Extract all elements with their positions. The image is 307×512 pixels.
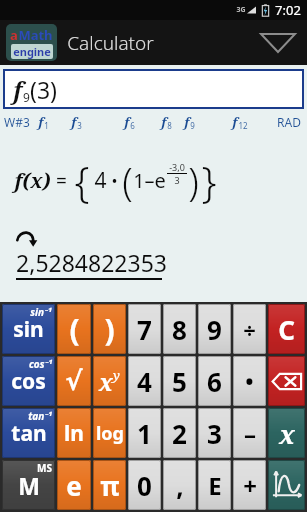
staticText: 5 <box>172 364 187 399</box>
button[interactable]: ln <box>57 408 91 458</box>
staticText: 1–e <box>133 167 166 194</box>
staticText: f <box>184 113 190 131</box>
button[interactable]: ÷ <box>233 304 266 354</box>
button[interactable]: 5 <box>163 356 196 406</box>
button[interactable]: E <box>198 460 231 510</box>
staticText: ) <box>104 309 115 350</box>
staticText: a <box>10 26 18 44</box>
button[interactable]: ) <box>93 304 126 354</box>
button[interactable]: aMath engine logo <box>10 26 53 59</box>
button[interactable]: • <box>233 356 266 406</box>
staticText: W#3 <box>4 114 30 130</box>
button[interactable]: cos <box>2 356 55 406</box>
button[interactable]: 8 <box>163 304 196 354</box>
staticText: ) <box>188 155 199 207</box>
staticText: = <box>56 168 67 194</box>
button[interactable]: √ <box>57 356 91 406</box>
staticText: ÷ <box>243 314 256 344</box>
staticText: 3 <box>77 120 82 131</box>
staticText: 7 <box>137 312 152 347</box>
staticText: 0 <box>137 468 152 503</box>
button[interactable]: x <box>268 408 305 458</box>
staticText: f <box>13 74 23 105</box>
staticText: Math <box>18 26 53 44</box>
button[interactable]: 6 <box>198 356 231 406</box>
staticText: -3,0 <box>169 161 185 173</box>
staticText: M <box>18 470 40 501</box>
staticText: log <box>96 421 124 446</box>
staticText: tan⁻¹ <box>28 409 52 423</box>
staticText: 1 <box>44 120 49 131</box>
button[interactable]: 2,5284822353 <box>16 247 167 280</box>
staticText: E <box>208 469 222 502</box>
staticText: f <box>161 113 167 131</box>
staticText: Calculator <box>67 30 154 56</box>
staticText: f(x) <box>14 167 51 194</box>
button[interactable]: Show more options <box>255 23 301 63</box>
staticText: 6 <box>207 364 222 399</box>
button[interactable]: e <box>57 460 91 510</box>
staticText: 2 <box>172 416 187 451</box>
button[interactable]: x <box>93 356 126 406</box>
staticText: f <box>232 113 238 131</box>
button[interactable]: 1 <box>128 408 161 458</box>
staticText: } <box>201 152 217 209</box>
button[interactable]: π <box>93 460 126 510</box>
staticText: cos⁻¹ <box>29 357 52 371</box>
button[interactable]: f <box>184 113 195 131</box>
staticText: 4 <box>137 364 152 399</box>
button[interactable]: + <box>233 460 266 510</box>
button[interactable]: 3 <box>198 408 231 458</box>
staticText: – <box>244 417 256 450</box>
button[interactable]: f <box>232 113 248 131</box>
staticText: f <box>71 113 77 131</box>
staticText: 9 <box>190 120 195 131</box>
staticText: • <box>245 366 254 396</box>
staticText: 7:02 <box>275 1 301 19</box>
button[interactable]: tan <box>2 408 55 458</box>
button[interactable]: f <box>161 113 172 131</box>
staticText: cos <box>11 367 46 396</box>
button[interactable]: 4 <box>128 356 161 406</box>
staticText: 4 <box>94 166 107 195</box>
staticText: 3G <box>236 5 246 15</box>
staticText: 12 <box>238 120 248 131</box>
staticText: { <box>74 152 90 209</box>
button[interactable]: sin <box>2 304 55 354</box>
button[interactable]: ( <box>57 304 91 354</box>
staticText: 9 <box>207 312 222 347</box>
button[interactable]: 0 <box>128 460 161 510</box>
staticText: ln <box>64 419 84 448</box>
staticText: e <box>66 468 82 503</box>
staticText: ( <box>69 309 80 350</box>
button[interactable]: f <box>38 113 49 131</box>
button[interactable]: f <box>124 113 135 131</box>
staticText: + <box>243 469 257 502</box>
staticText: √ <box>65 366 83 396</box>
button[interactable]: 7 <box>128 304 161 354</box>
button[interactable]: – <box>233 408 266 458</box>
staticText: 3 <box>174 174 180 186</box>
button[interactable]: 2 <box>163 408 196 458</box>
button[interactable]: Graph <box>268 460 305 510</box>
button[interactable]: C <box>268 304 305 354</box>
button[interactable]: Backspace <box>268 356 305 406</box>
staticText: ( <box>122 155 133 207</box>
button[interactable]: log <box>93 408 126 458</box>
staticText: f <box>124 113 130 131</box>
staticText: MS <box>37 461 52 475</box>
staticText: f <box>38 113 44 131</box>
button[interactable]: , <box>163 460 196 510</box>
staticText: x <box>279 416 295 451</box>
button[interactable]: f <box>71 113 82 131</box>
staticText: 1 <box>137 416 152 451</box>
staticText: 6 <box>130 120 135 131</box>
staticText: engine <box>13 44 51 59</box>
staticText: sin <box>13 315 44 344</box>
staticText: 2,5284822353 <box>16 247 167 278</box>
button[interactable]: 9 <box>198 304 231 354</box>
staticText: 9 <box>23 89 30 105</box>
button[interactable]: f <box>3 69 304 109</box>
staticText: RAD <box>277 114 301 130</box>
button[interactable]: M <box>2 460 55 510</box>
